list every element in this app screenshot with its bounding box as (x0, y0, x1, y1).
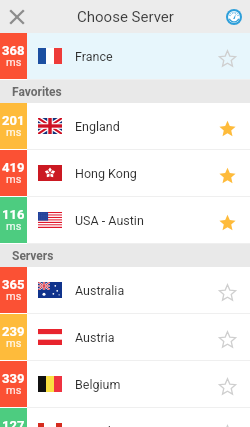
button[interactable]: Speed test (217, 0, 250, 33)
staticText: France (75, 49, 113, 64)
staticText: 368 (2, 43, 25, 58)
staticText: 116 (2, 207, 25, 222)
staticText: USA - Austin (75, 213, 144, 228)
button[interactable]: Favorite (209, 103, 245, 149)
staticText: 339 (2, 371, 25, 386)
staticText: 239 (2, 324, 25, 339)
button[interactable]: 365 (0, 267, 250, 313)
button[interactable]: 339 (0, 361, 250, 407)
button[interactable]: 419 (0, 150, 250, 196)
staticText: England (75, 119, 120, 134)
button[interactable]: Favorite (209, 197, 245, 243)
staticText: Favorites (12, 85, 62, 99)
button[interactable]: 201 (0, 103, 250, 149)
staticText: 419 (2, 160, 25, 175)
button[interactable]: Close (0, 0, 34, 33)
button[interactable]: Favorite (209, 267, 245, 313)
staticText: Servers (12, 249, 54, 263)
staticText: 201 (2, 113, 25, 128)
staticText: Belgium (75, 377, 121, 392)
button[interactable]: 368 (0, 33, 250, 79)
button[interactable]: 127 (0, 408, 250, 427)
staticText: Hong Kong (75, 166, 137, 181)
button[interactable]: Favorite (209, 150, 245, 196)
staticText: ms (6, 384, 22, 397)
button[interactable]: Favorite (209, 314, 245, 360)
button[interactable]: 116 (0, 197, 250, 243)
staticText: ms (6, 126, 22, 139)
staticText: Canada (75, 424, 118, 427)
staticText: Australia (75, 283, 125, 298)
staticText: 365 (2, 277, 25, 292)
staticText: Austria (75, 330, 115, 345)
staticText: ms (6, 337, 22, 350)
staticText: Choose Server (77, 8, 174, 26)
staticText: ms (6, 56, 22, 69)
button[interactable]: Favorite (209, 408, 245, 427)
staticText: 127 (2, 418, 25, 427)
staticText: ms (6, 220, 22, 233)
staticText: ms (6, 173, 22, 186)
button[interactable]: 239 (0, 314, 250, 360)
button[interactable]: Favorite (209, 33, 245, 79)
button[interactable]: Favorite (209, 361, 245, 407)
staticText: ms (6, 290, 22, 303)
